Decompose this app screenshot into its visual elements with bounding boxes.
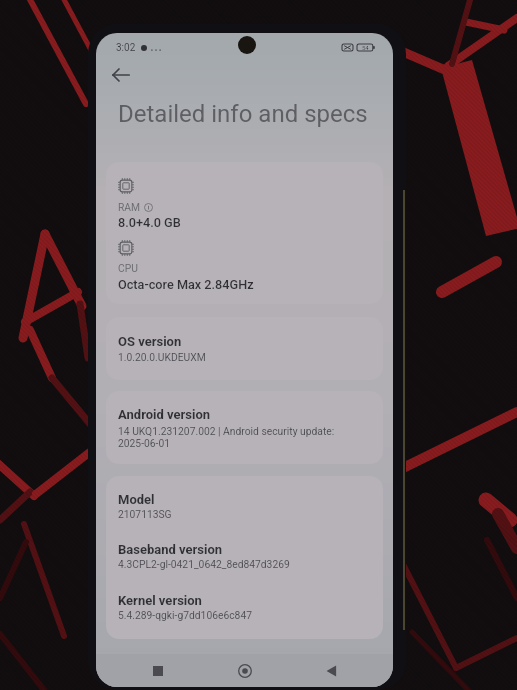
button[interactable]: Back [99, 56, 143, 94]
staticText: 14 UKQ1.231207.002 | Android security up… [118, 425, 335, 449]
button[interactable]: Android version [106, 391, 383, 464]
staticText: 4.3CPL2-gl-0421_0642_8ed847d3269 [118, 558, 290, 570]
staticText: CPU [118, 262, 138, 274]
staticText: Detailed info and specs [118, 100, 368, 128]
staticText: OS version [118, 334, 182, 349]
staticText: 2107113SG [118, 508, 172, 520]
staticText: 3:02 [116, 42, 136, 54]
staticText: Model [118, 492, 155, 507]
staticText: 54 [362, 44, 369, 51]
button[interactable]: Home [221, 655, 269, 687]
staticText: RAM [118, 201, 141, 213]
button[interactable]: Recent apps [134, 655, 182, 687]
button[interactable]: Model [106, 476, 383, 639]
staticText: 1.0.20.0.UKDEUXM [118, 351, 206, 363]
staticText: Android version [118, 407, 211, 422]
button[interactable]: OS version [106, 317, 383, 380]
staticText: 8.0+4.0 GB [118, 215, 181, 230]
button[interactable]: RAM [106, 162, 383, 304]
staticText: Octa-core Max 2.84GHz [118, 277, 254, 292]
staticText: 5.4.289-qgki-g7dd106e6c847 [118, 609, 252, 621]
staticText: Baseband version [118, 542, 223, 557]
button[interactable]: Back [307, 655, 355, 687]
staticText: Kernel version [118, 593, 202, 608]
